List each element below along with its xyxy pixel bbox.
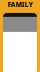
staticText: FAMILY — [7, 0, 32, 9]
